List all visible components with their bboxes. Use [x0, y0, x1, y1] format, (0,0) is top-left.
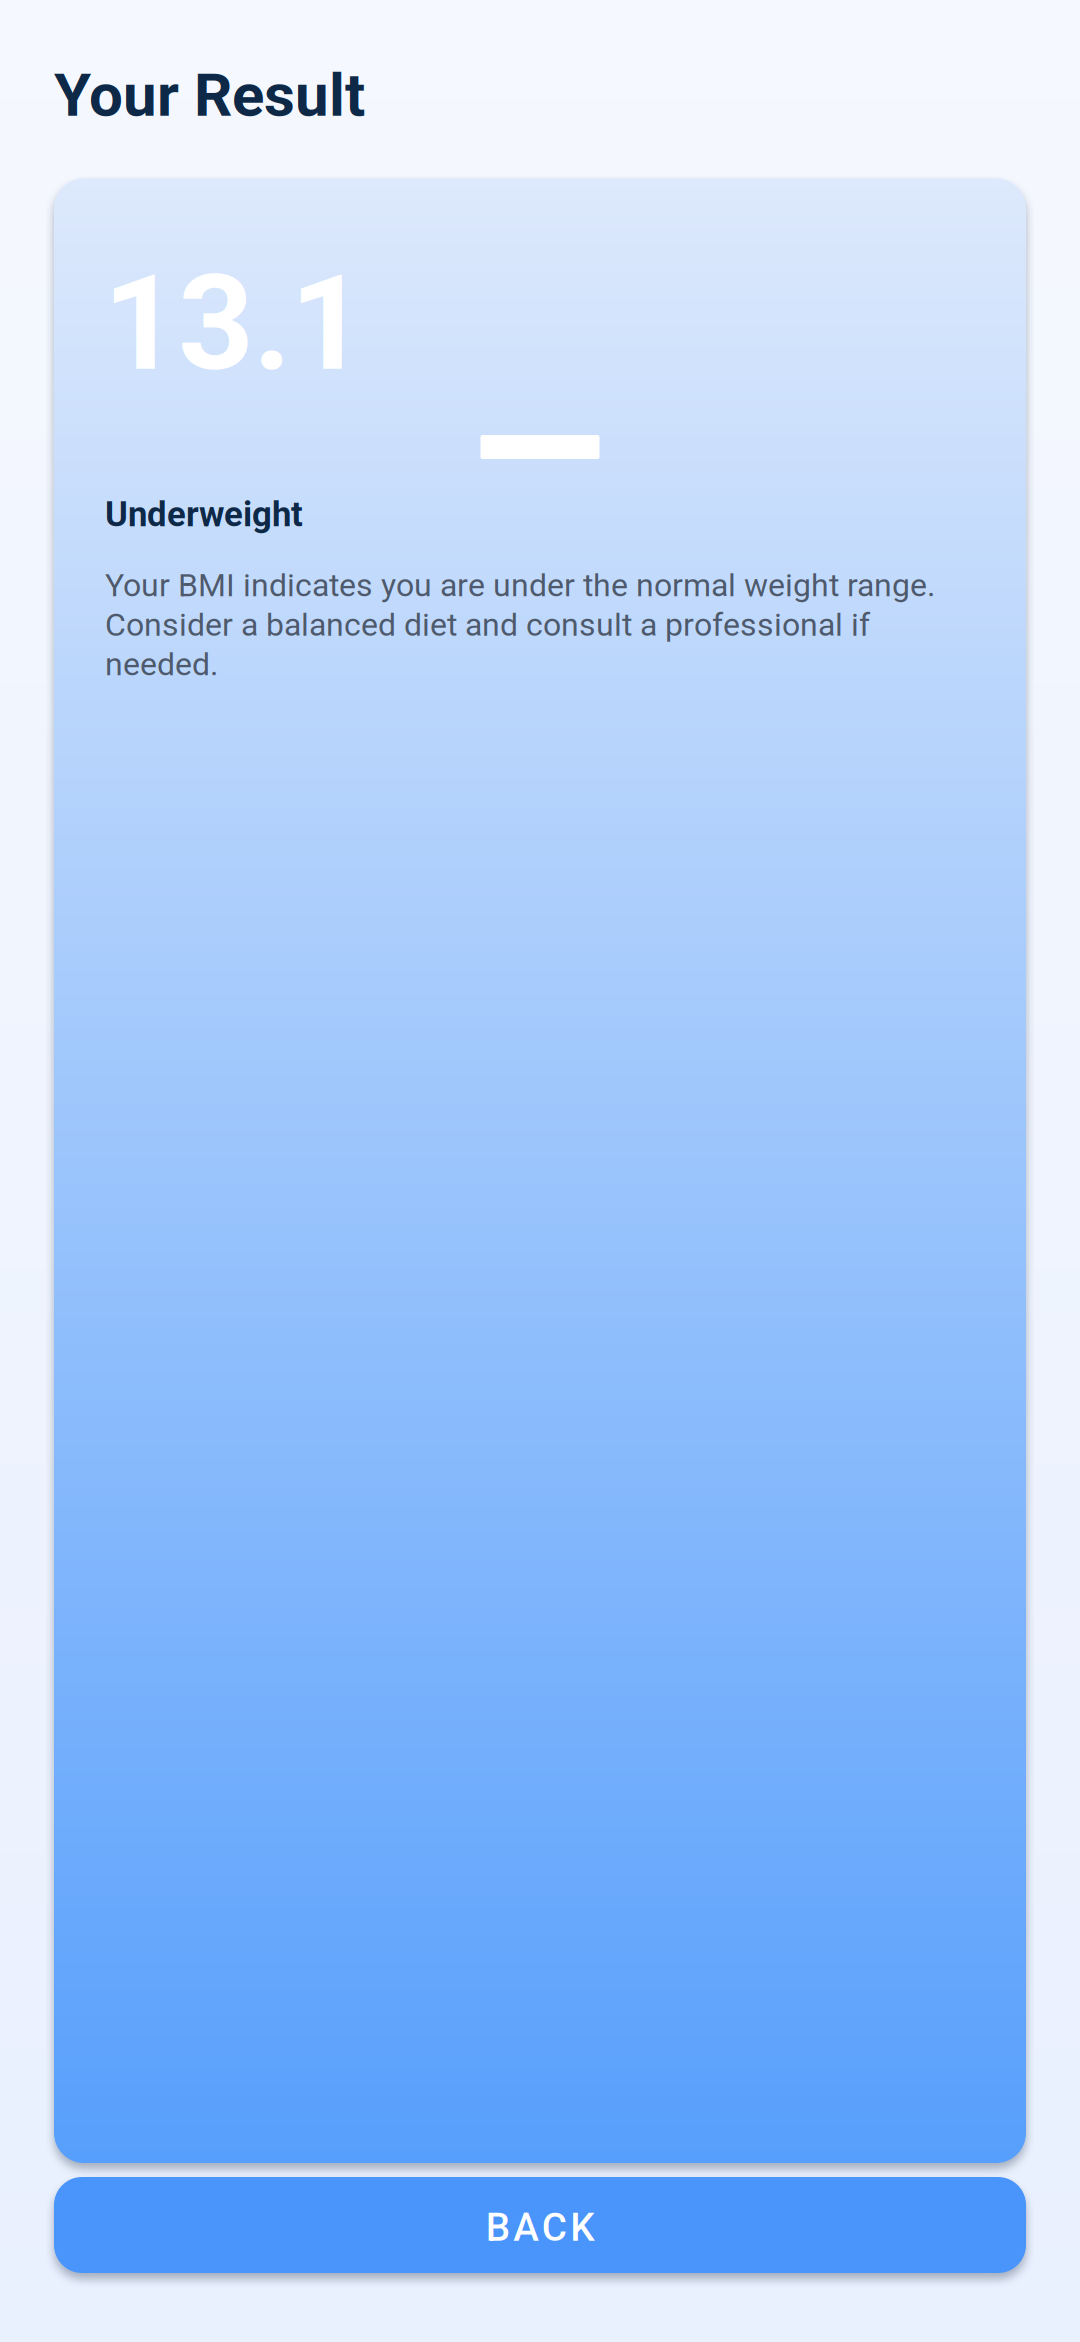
staticText: Your BMI indicates you are under the nor…	[105, 567, 935, 683]
staticText: 13.1	[103, 246, 366, 401]
button[interactable]: BACK	[54, 2177, 1026, 2273]
staticText: Your Result	[54, 60, 365, 130]
staticText: BACK	[486, 2205, 594, 2250]
staticText: Underweight	[105, 494, 303, 535]
